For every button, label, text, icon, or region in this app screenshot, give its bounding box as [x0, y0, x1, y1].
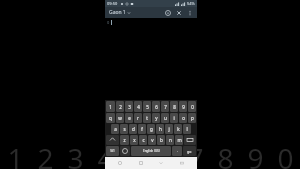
button[interactable]: p — [188, 113, 196, 123]
staticText: a — [114, 126, 117, 132]
staticText: d — [132, 126, 135, 132]
staticText: 09:50 — [107, 1, 118, 6]
staticText: w — [118, 115, 122, 121]
button[interactable]: . — [172, 146, 182, 156]
button[interactable]: !#1 — [106, 146, 119, 156]
button[interactable]: q — [106, 113, 115, 123]
button[interactable]: Change keyboard — [177, 158, 187, 168]
staticText: z — [123, 137, 126, 143]
button[interactable]: x — [130, 135, 138, 145]
staticText: 8 — [173, 104, 176, 110]
staticText: 0 — [277, 139, 294, 169]
button[interactable]: r — [134, 113, 142, 123]
button[interactable]: 4 — [134, 101, 142, 112]
button[interactable]: 2 — [116, 101, 124, 112]
staticText: 1 — [109, 104, 112, 110]
button[interactable]: 3 — [125, 101, 133, 112]
staticText: o — [182, 115, 185, 121]
button[interactable]: English (US) — [131, 146, 171, 156]
button[interactable]: Info — [163, 8, 172, 17]
button[interactable]: 7 — [161, 101, 169, 112]
staticText: n — [169, 137, 172, 143]
staticText: 8 — [217, 139, 234, 169]
staticText: 7 — [187, 139, 204, 169]
staticText: g — [150, 126, 153, 132]
staticText: v — [151, 137, 154, 143]
staticText: f — [141, 126, 143, 132]
staticText: 6 — [157, 139, 174, 169]
button[interactable]: a — [111, 124, 119, 134]
button[interactable]: f — [138, 124, 146, 134]
button[interactable]: 9 — [179, 101, 187, 112]
button[interactable]: Close — [174, 8, 183, 17]
button[interactable]: More options — [185, 8, 194, 17]
staticText: q — [109, 115, 112, 121]
button[interactable]: 0 — [105, 18, 197, 100]
button[interactable]: t — [143, 113, 151, 123]
button[interactable]: h — [156, 124, 164, 134]
button[interactable]: i — [170, 113, 178, 123]
staticText: !#1 — [110, 149, 115, 153]
button[interactable]: j — [165, 124, 173, 134]
staticText: 5 — [146, 104, 149, 110]
staticText: 0 — [191, 104, 194, 110]
button[interactable]: 1 — [106, 101, 115, 112]
staticText: English (US) — [143, 149, 160, 153]
button[interactable]: e — [125, 113, 133, 123]
staticText: Gaon 1 — [109, 9, 126, 16]
button[interactable]: k — [174, 124, 182, 134]
button[interactable]: c — [139, 135, 147, 145]
button[interactable]: u — [161, 113, 169, 123]
staticText: k — [177, 126, 180, 132]
button[interactable]: n — [166, 135, 174, 145]
button[interactable]: m — [175, 135, 183, 145]
button[interactable]: b — [157, 135, 165, 145]
button[interactable]: 0 — [188, 101, 196, 112]
staticText: 2 — [119, 104, 122, 110]
button[interactable]: w — [116, 113, 124, 123]
button[interactable]: o — [179, 113, 187, 123]
button[interactable]: Emoji — [120, 146, 130, 156]
staticText: 9 — [247, 139, 264, 169]
staticText: c — [142, 137, 145, 143]
button[interactable]: z — [120, 135, 129, 145]
staticText: 6 — [155, 104, 158, 110]
staticText: t — [146, 115, 148, 121]
staticText: p — [191, 115, 194, 121]
button[interactable]: Back — [156, 158, 166, 168]
staticText: s — [123, 126, 126, 132]
staticText: 54% — [187, 1, 195, 6]
staticText: l — [186, 126, 188, 132]
staticText: 2 — [37, 139, 54, 169]
button[interactable]: v — [148, 135, 156, 145]
staticText: . — [177, 149, 178, 153]
button[interactable]: y — [152, 113, 160, 123]
staticText: j — [168, 126, 170, 132]
button[interactable]: g — [147, 124, 155, 134]
staticText: m — [177, 137, 182, 143]
button[interactable]: Gaon 1 — [108, 8, 132, 17]
button[interactable]: 5 — [143, 101, 151, 112]
button[interactable]: Enter — [183, 146, 196, 156]
button[interactable]: 6 — [152, 101, 160, 112]
staticText: 9 — [182, 104, 185, 110]
button[interactable]: Home — [136, 158, 146, 168]
staticText: e — [128, 115, 131, 121]
staticText: 5 — [127, 139, 144, 169]
button[interactable]: d — [129, 124, 137, 134]
staticText: 4 — [137, 104, 140, 110]
button[interactable]: l — [183, 124, 191, 134]
staticText: go — [187, 149, 192, 154]
button[interactable]: Recent apps — [115, 158, 125, 168]
staticText: b — [160, 137, 163, 143]
staticText: r — [137, 115, 139, 121]
staticText: 3 — [67, 139, 84, 169]
staticText: h — [159, 126, 162, 132]
button[interactable]: 8 — [170, 101, 178, 112]
button[interactable]: Backspace — [184, 135, 196, 145]
staticText: 1 — [7, 139, 24, 169]
button[interactable]: s — [120, 124, 128, 134]
staticText: x — [133, 137, 136, 143]
button[interactable]: Shift — [106, 135, 119, 145]
staticText: i — [173, 115, 175, 121]
